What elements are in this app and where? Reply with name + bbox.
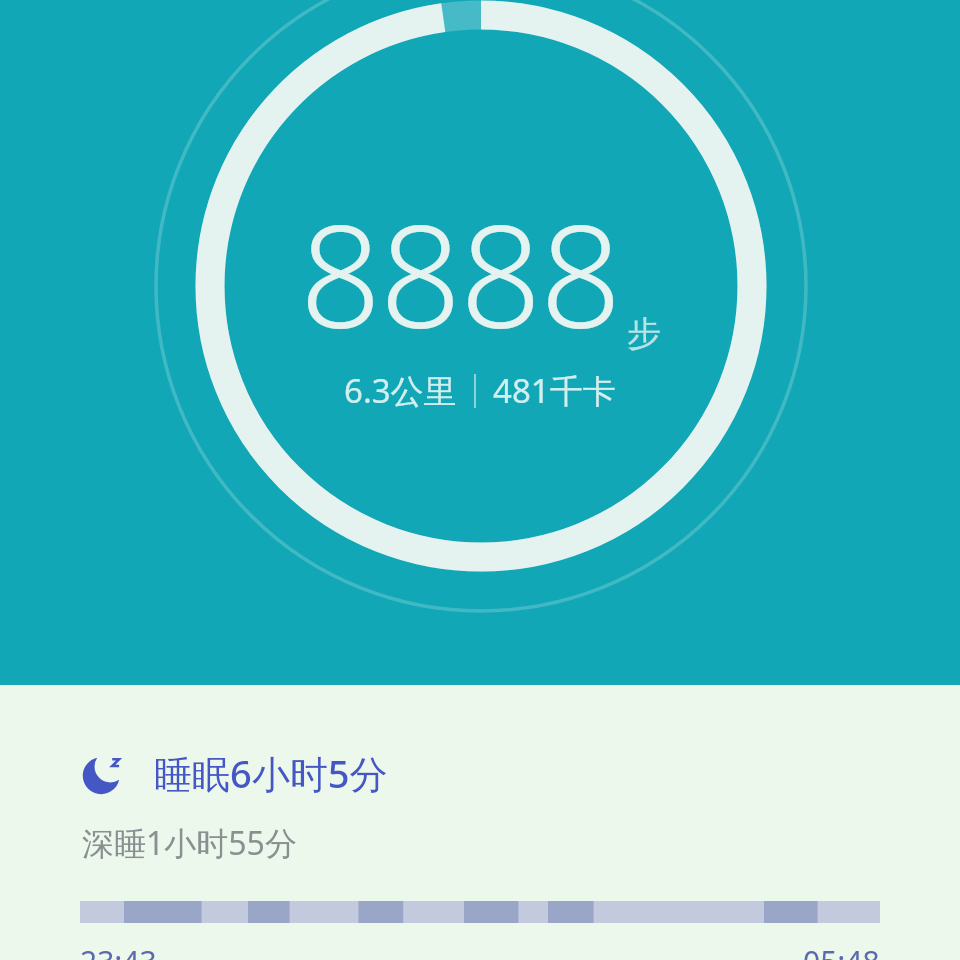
staticText: 深睡1小时55分 bbox=[82, 821, 297, 865]
staticText: 睡眠6小时5分 bbox=[154, 747, 388, 799]
staticText: 05:48 bbox=[803, 941, 880, 960]
staticText: 481千卡 bbox=[493, 368, 616, 413]
other: Sleep bbox=[80, 750, 126, 796]
staticText: 23:43 bbox=[80, 941, 157, 960]
staticText: 8888 bbox=[300, 176, 621, 369]
button[interactable]: Sleep bbox=[0, 685, 960, 960]
staticText: 步 bbox=[627, 312, 661, 355]
staticText: 6.3公里 bbox=[344, 368, 457, 413]
button[interactable]: 8888 bbox=[0, 0, 960, 685]
